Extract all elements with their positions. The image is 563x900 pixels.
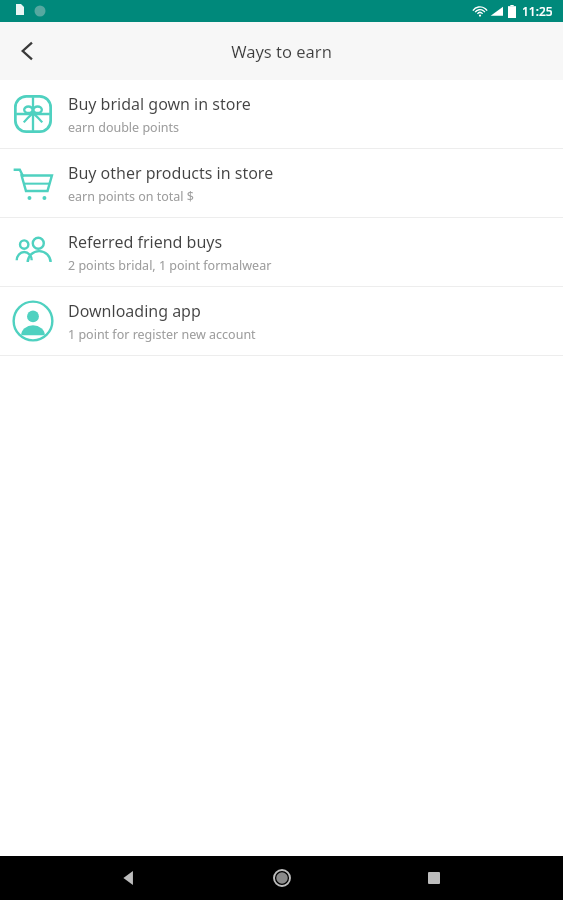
button[interactable]: Home [258, 856, 306, 900]
staticText: Referred friend buys [68, 231, 223, 253]
staticText: Downloading app [68, 300, 201, 322]
button[interactable]: Back [0, 23, 56, 79]
button[interactable]: Downloading app [0, 287, 563, 355]
staticText: 1 point for register new account [68, 326, 256, 343]
staticText: Buy bridal gown in store [68, 93, 251, 115]
staticText: Ways to earn [231, 40, 332, 62]
staticText: 11:25 [522, 3, 553, 19]
staticText: earn double points [68, 119, 180, 136]
staticText: Buy other products in store [68, 162, 274, 184]
button[interactable]: Recent apps [410, 856, 458, 900]
staticText: earn points on total $ [68, 188, 194, 205]
button[interactable]: Referred friend buys [0, 218, 563, 286]
staticText: 2 points bridal, 1 point formalwear [68, 257, 272, 274]
button[interactable]: Buy bridal gown in store [0, 80, 563, 148]
button[interactable]: Back [105, 856, 153, 900]
button[interactable]: Buy other products in store [0, 149, 563, 217]
